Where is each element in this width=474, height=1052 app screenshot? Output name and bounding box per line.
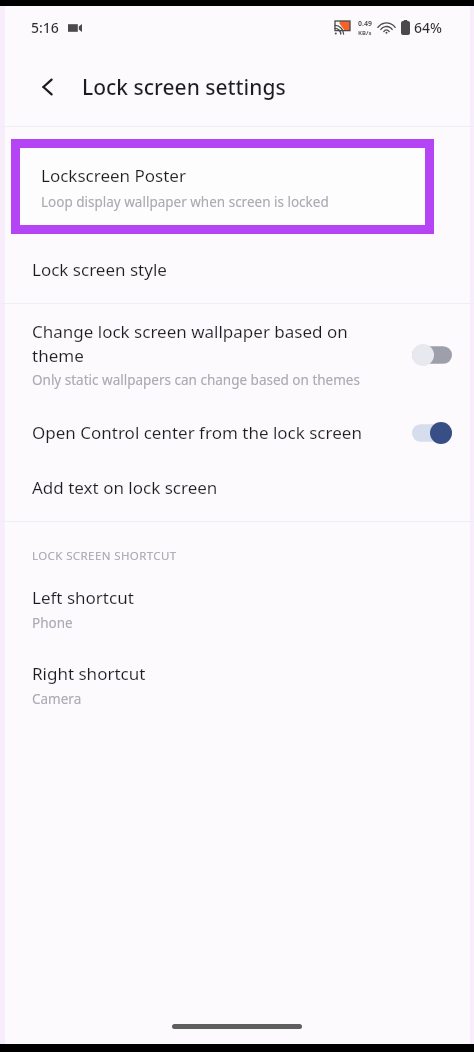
- staticText: Lock screen style: [32, 258, 167, 281]
- staticText: Camera: [32, 690, 82, 708]
- staticText: Phone: [32, 614, 73, 632]
- staticText: Lock screen settings: [82, 73, 286, 102]
- button[interactable]: Lockscreen Poster: [20, 148, 425, 225]
- button[interactable]: Open Control center from the lock screen: [0, 415, 474, 450]
- staticText: 5:16: [31, 18, 59, 37]
- button[interactable]: Left shortcut: [0, 582, 474, 636]
- staticText: 0.49: [358, 19, 372, 29]
- staticText: Lockscreen Poster: [41, 164, 186, 187]
- button[interactable]: Add text on lock screen: [0, 472, 474, 521]
- button[interactable]: Back: [30, 69, 66, 105]
- staticText: Change lock screen wallpaper based on th…: [32, 320, 392, 367]
- staticText: Left shortcut: [32, 586, 134, 609]
- staticText: 64%: [414, 18, 442, 37]
- button[interactable]: Right shortcut: [0, 658, 474, 712]
- button[interactable]: Change lock screen wallpaper based on th…: [0, 314, 474, 395]
- staticText: Only static wallpapers can change based …: [32, 371, 360, 389]
- staticText: KB/s: [358, 29, 372, 37]
- button[interactable]: Lock screen style: [0, 240, 474, 303]
- staticText: Loop display wallpaper when screen is lo…: [41, 193, 329, 211]
- staticText: Open Control center from the lock screen: [32, 421, 362, 444]
- staticText: LOCK SCREEN SHORTCUT: [32, 548, 177, 564]
- button[interactable]: Toggle on: [412, 422, 452, 444]
- button[interactable]: Toggle off: [412, 344, 452, 366]
- staticText: Add text on lock screen: [32, 476, 218, 499]
- staticText: Right shortcut: [32, 662, 146, 685]
